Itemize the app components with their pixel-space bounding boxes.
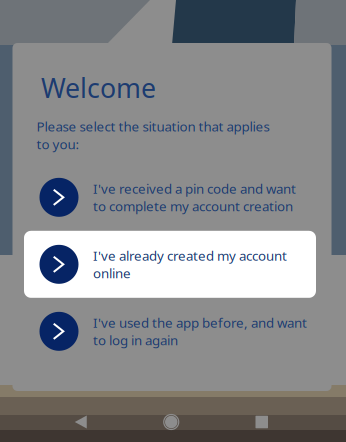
button[interactable]: I've already created my account online (24, 231, 316, 298)
staticText: Please select the situation that applies… (36, 117, 269, 153)
staticText: I've used the app before, and want to lo… (93, 314, 307, 349)
staticText: I've received a pin code and want to com… (93, 180, 296, 215)
button[interactable]: I've received a pin code and want to com… (24, 164, 316, 231)
button[interactable]: Back (35, 402, 126, 442)
staticText: Welcome (41, 70, 156, 105)
button[interactable]: Recents (216, 402, 307, 442)
staticText: I've already created my account online (93, 247, 287, 282)
button[interactable]: Home (126, 402, 216, 442)
button[interactable]: I've used the app before, and want to lo… (24, 298, 316, 365)
